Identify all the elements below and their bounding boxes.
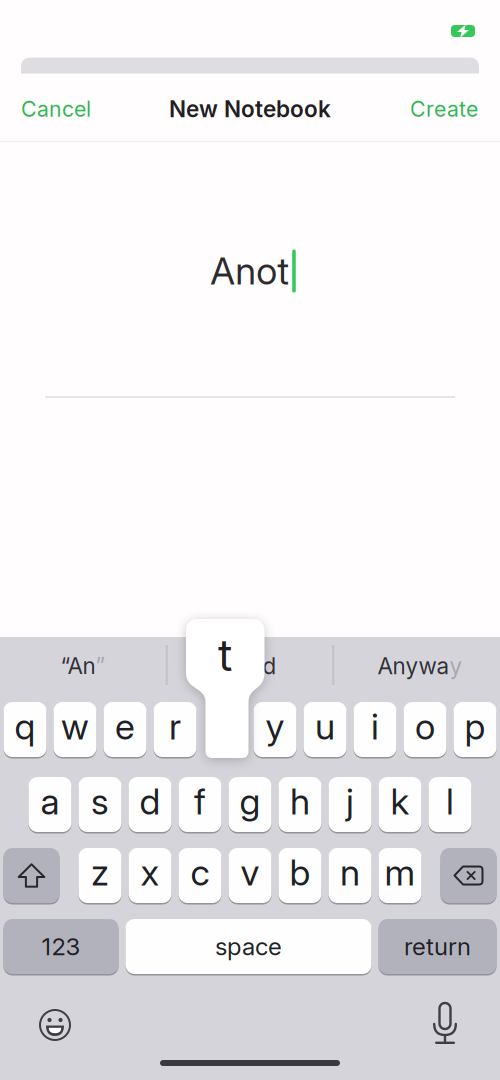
staticText: t — [218, 629, 232, 681]
staticText: z — [91, 851, 109, 894]
staticText: w — [61, 705, 89, 748]
button[interactable]: e — [103, 701, 146, 758]
button[interactable]: Emoji — [33, 1003, 77, 1047]
staticText: Anot — [210, 249, 289, 293]
staticText: j — [346, 780, 354, 823]
button[interactable]: b — [278, 847, 321, 904]
button[interactable]: y — [253, 701, 296, 758]
staticText: 123 — [41, 932, 80, 961]
staticText: b — [289, 851, 310, 894]
staticText: d — [139, 780, 160, 823]
button[interactable]: Dictation — [423, 1003, 467, 1047]
button[interactable]: m — [378, 847, 421, 904]
button[interactable]: f — [178, 776, 221, 833]
staticText: n — [340, 851, 360, 894]
button[interactable]: l — [428, 776, 471, 833]
staticText: g — [239, 780, 260, 823]
button[interactable]: Delete — [440, 847, 496, 904]
button[interactable]: Cancel — [21, 96, 91, 122]
staticText: p — [464, 705, 485, 748]
staticText: l — [446, 780, 454, 823]
staticText: o — [415, 705, 435, 748]
staticText: a — [40, 780, 59, 823]
button[interactable]: o — [403, 701, 446, 758]
button[interactable]: j — [328, 776, 371, 833]
button[interactable]: d — [128, 776, 171, 833]
button[interactable]: i — [353, 701, 396, 758]
button[interactable]: u — [303, 701, 346, 758]
button[interactable]: return — [378, 918, 496, 975]
button[interactable]: k — [378, 776, 421, 833]
staticText: Cancel — [21, 96, 91, 122]
staticText: y — [449, 653, 462, 679]
button[interactable]: q — [3, 701, 46, 758]
staticText: h — [290, 780, 310, 823]
button[interactable]: Shift — [3, 847, 59, 904]
staticText: space — [215, 932, 282, 961]
staticText: “An — [60, 653, 95, 679]
button[interactable]: s — [78, 776, 121, 833]
staticText: New Notebook — [169, 96, 331, 122]
staticText: u — [315, 705, 335, 748]
staticText: ” — [95, 653, 105, 679]
staticText: e — [115, 705, 135, 748]
button[interactable]: v — [228, 847, 271, 904]
button[interactable]: w — [53, 701, 96, 758]
button[interactable]: c — [178, 847, 221, 904]
button[interactable]: And — [234, 653, 276, 679]
staticText: m — [384, 851, 415, 894]
button[interactable]: r — [153, 701, 196, 758]
button[interactable]: Anywa — [377, 653, 462, 679]
staticText: i — [371, 705, 379, 748]
button[interactable]: Create — [410, 96, 478, 122]
button[interactable]: p — [453, 701, 496, 758]
staticText: f — [194, 780, 206, 823]
button[interactable]: g — [228, 776, 271, 833]
button[interactable]: “An — [60, 653, 105, 679]
button[interactable]: h — [278, 776, 321, 833]
staticText: s — [91, 780, 109, 823]
staticText: y — [265, 705, 284, 748]
button[interactable]: n — [328, 847, 371, 904]
button[interactable]: x — [128, 847, 171, 904]
staticText: return — [404, 932, 471, 961]
staticText: And — [234, 653, 276, 679]
staticText: k — [390, 780, 409, 823]
staticText: r — [169, 705, 181, 748]
staticText: x — [140, 851, 159, 894]
button[interactable]: space — [125, 918, 371, 975]
button[interactable]: z — [78, 847, 121, 904]
button[interactable]: a — [28, 776, 71, 833]
button[interactable]: 123 — [3, 918, 118, 975]
staticText: c — [190, 851, 209, 894]
staticText: Anywa — [377, 653, 449, 679]
staticText: q — [14, 705, 35, 748]
staticText: v — [240, 851, 259, 894]
staticText: Create — [410, 96, 478, 122]
